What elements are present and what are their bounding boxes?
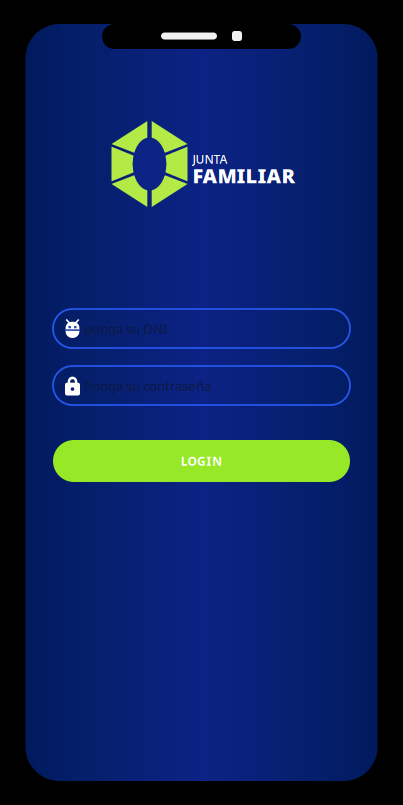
- staticText: FAMILIAR: [192, 162, 295, 189]
- button[interactable]: LOGIN: [53, 440, 350, 482]
- staticText: Ponga su contraseña: [84, 377, 211, 394]
- button[interactable]: Ponga su contraseña: [53, 366, 350, 405]
- staticText: JUNTA: [192, 151, 227, 167]
- button[interactable]: ponga su DNI: [53, 309, 350, 348]
- staticText: LOGIN: [181, 453, 222, 469]
- staticText: ponga su DNI: [84, 320, 168, 337]
